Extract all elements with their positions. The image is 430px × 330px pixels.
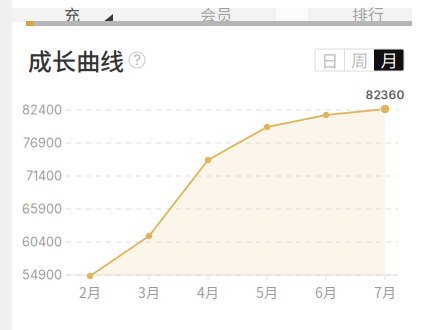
staticText: 会员 [200, 2, 232, 26]
staticText: 6月 [315, 282, 337, 302]
staticText: 充 [64, 2, 80, 26]
button[interactable]: 充 [52, 6, 92, 22]
button[interactable]: 日 [315, 49, 344, 71]
button[interactable]: Help [124, 49, 150, 71]
button[interactable]: 月 [374, 49, 404, 71]
staticText: 日 [321, 47, 338, 73]
staticText: 54900 [22, 267, 62, 283]
staticText: 4月 [197, 282, 219, 302]
staticText: 60400 [22, 234, 62, 250]
button[interactable]: 会员 [194, 6, 238, 22]
staticText: 82400 [22, 102, 62, 118]
staticText: 排行 [352, 2, 384, 26]
staticText: 2月 [79, 282, 101, 302]
staticText: 3月 [138, 282, 160, 302]
staticText: 76900 [23, 135, 62, 151]
staticText: 周 [351, 47, 368, 73]
staticText: 71400 [26, 168, 62, 184]
staticText: 成长曲线 [28, 43, 124, 77]
staticText: 65900 [22, 201, 62, 217]
staticText: 月 [380, 47, 397, 73]
staticText: ? [133, 51, 140, 69]
staticText: 82360 [365, 88, 404, 102]
staticText: 7月 [374, 282, 396, 302]
button[interactable]: 排行 [346, 6, 390, 22]
button[interactable]: 周 [345, 49, 374, 71]
staticText: 5月 [256, 282, 278, 302]
